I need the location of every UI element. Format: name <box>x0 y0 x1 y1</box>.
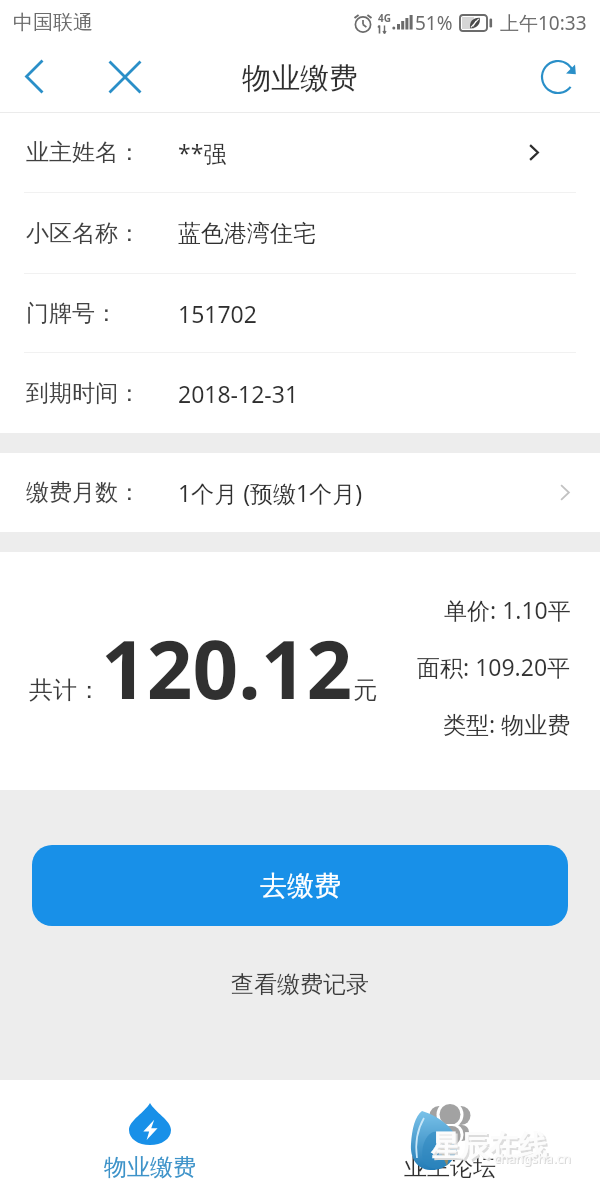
staticText: 共计： <box>29 675 101 705</box>
staticText: 类型: 物业费 <box>443 708 571 739</box>
staticText: 蓝色港湾住宅 <box>178 219 316 248</box>
staticText: 星辰在线 <box>431 1128 547 1165</box>
button[interactable]: Back <box>0 45 68 108</box>
button[interactable]: 缴费月数： <box>0 453 600 532</box>
button[interactable]: Refresh <box>525 45 591 108</box>
staticText: 2018-12-31 <box>178 378 299 409</box>
staticText: 缴费月数： <box>26 478 141 507</box>
staticText: 120.12 <box>101 613 353 722</box>
button[interactable]: 查看缴费记录 <box>215 966 385 1003</box>
button[interactable]: Close <box>91 45 159 108</box>
staticText: 物业缴费 <box>104 1153 196 1182</box>
staticText: 元 <box>353 675 377 705</box>
staticText: 小区名称： <box>26 219 141 248</box>
button[interactable]: 物业缴费 <box>0 1080 300 1200</box>
staticText: 门牌号： <box>26 299 118 328</box>
staticText: changsha.cn <box>494 1149 571 1167</box>
button[interactable]: 到期时间： <box>0 353 600 433</box>
staticText: 业主论坛 <box>404 1153 496 1182</box>
staticText: 面积: 109.20平 <box>417 651 571 682</box>
staticText: 4G <box>378 11 391 25</box>
staticText: 查看缴费记录 <box>231 970 369 999</box>
staticText: 中国联通 <box>13 10 93 35</box>
button[interactable]: 业主姓名： <box>0 113 600 192</box>
staticText: 物业缴费 <box>242 60 358 97</box>
staticText: **强 <box>178 137 227 168</box>
staticText: 去缴费 <box>260 869 341 903</box>
button[interactable]: 业主论坛 <box>300 1080 600 1200</box>
staticText: 星辰在线 <box>433 1130 549 1167</box>
staticText: 1个月 (预缴1个月) <box>178 477 363 508</box>
button[interactable]: 门牌号： <box>0 274 600 352</box>
button[interactable]: 小区名称： <box>0 193 600 273</box>
staticText: 51% <box>415 10 453 36</box>
staticText: 单价: 1.10平 <box>444 594 571 625</box>
button[interactable]: 去缴费 <box>32 845 568 926</box>
staticText: 业主姓名： <box>26 138 141 167</box>
staticText: changsha.cn <box>495 1150 572 1168</box>
staticText: 上午10:33 <box>500 10 587 36</box>
staticText: 151702 <box>178 298 257 329</box>
staticText: 到期时间： <box>26 379 141 408</box>
